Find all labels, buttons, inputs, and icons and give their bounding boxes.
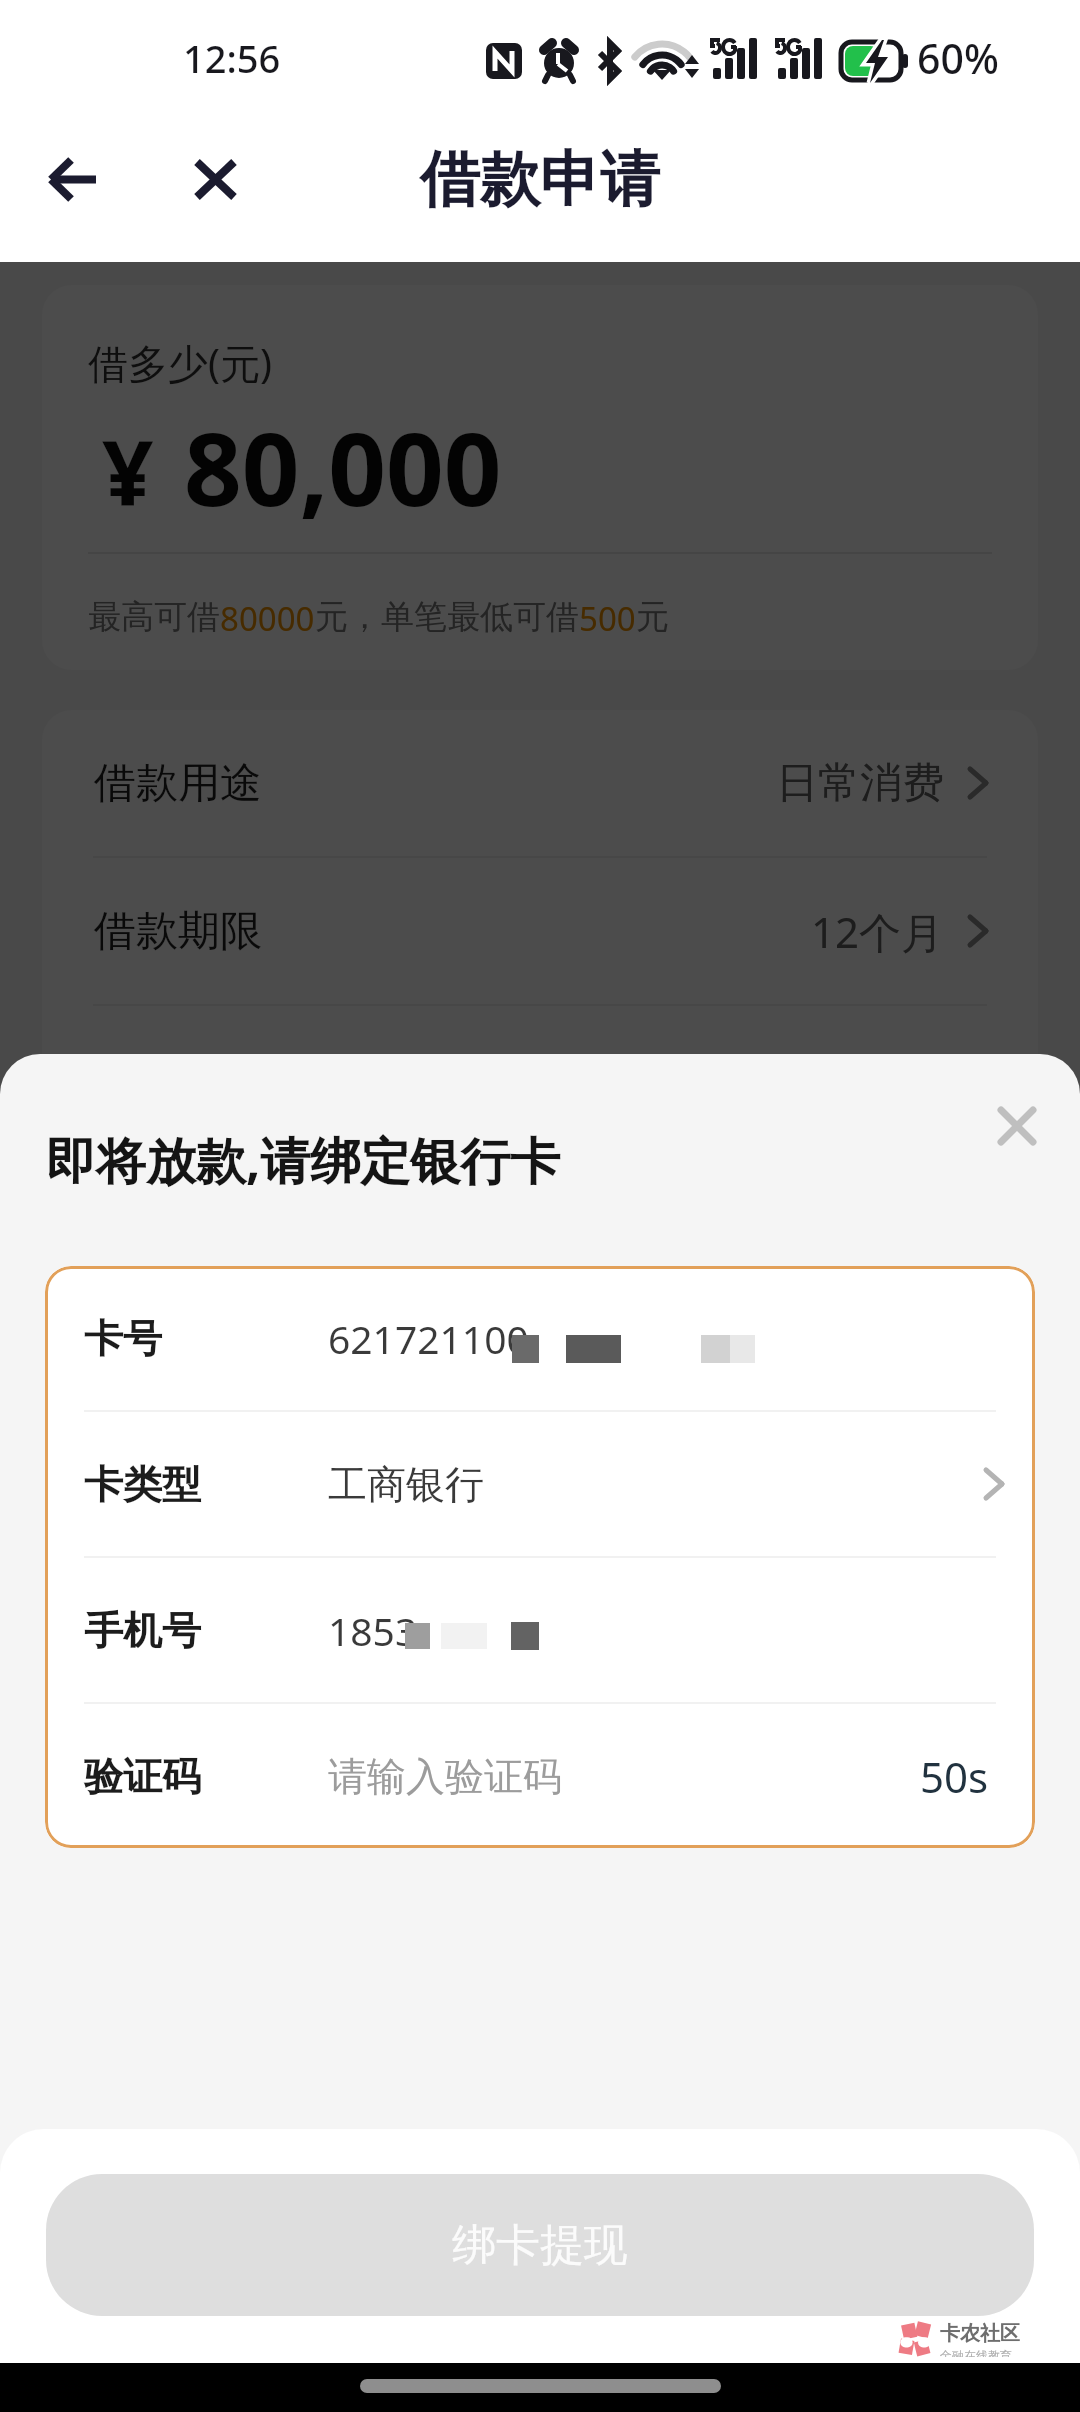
staticText: ¥ bbox=[102, 410, 154, 533]
staticText: 12:56 bbox=[183, 32, 281, 84]
staticText: 1853 bbox=[328, 1604, 418, 1657]
button[interactable]: 验证码 bbox=[45, 1704, 1035, 1848]
staticText: 卡农社区 bbox=[940, 2321, 1020, 2346]
staticText: 借款用途 bbox=[94, 757, 262, 810]
staticText: 元，单笔最低可借 bbox=[315, 596, 579, 638]
button[interactable]: Back bbox=[24, 131, 120, 227]
staticText: 借多少(元) bbox=[88, 335, 272, 390]
staticText: 卡类型 bbox=[84, 1460, 201, 1509]
staticText: 验证码 bbox=[84, 1752, 201, 1801]
button[interactable]: 借款期限 bbox=[94, 858, 987, 1004]
staticText: 工商银行 bbox=[328, 1460, 484, 1509]
staticText: 金融在线教育 bbox=[940, 2348, 1012, 2357]
staticText: 绑卡提现 bbox=[452, 2218, 628, 2273]
staticText: 等额本息 bbox=[776, 1053, 944, 1106]
staticText: 卡号 bbox=[84, 1314, 162, 1363]
staticText: 还款方式 bbox=[94, 1053, 262, 1106]
button[interactable]: 借款用途 bbox=[94, 710, 987, 856]
button[interactable]: 绑卡提现 bbox=[46, 2174, 1034, 2316]
staticText: 60% bbox=[917, 30, 999, 86]
staticText: 请输入验证码 bbox=[328, 1752, 562, 1801]
button[interactable]: 卡类型 bbox=[45, 1412, 1035, 1556]
staticText: 80000 bbox=[220, 596, 315, 641]
button[interactable]: 手机号 bbox=[45, 1558, 1035, 1702]
staticText: 元 bbox=[636, 596, 669, 638]
staticText: 12个月 bbox=[811, 903, 944, 960]
button[interactable]: 卡号 bbox=[45, 1266, 1035, 1410]
staticText: 80,000 bbox=[184, 398, 502, 536]
staticText: 手机号 bbox=[84, 1606, 201, 1655]
staticText: 50s bbox=[920, 1748, 989, 1805]
staticText: 日常消费 bbox=[776, 757, 944, 810]
staticText: 借款期限 bbox=[94, 905, 262, 958]
button[interactable]: Close bbox=[167, 131, 263, 227]
button[interactable]: 还款方式 bbox=[94, 1006, 987, 1152]
staticText: 最高可借 bbox=[88, 596, 220, 638]
button[interactable]: Close sheet bbox=[979, 1088, 1055, 1164]
staticText: 即将放款,请绑定银行卡 bbox=[46, 1126, 561, 1194]
staticText: 借款申请 bbox=[420, 142, 660, 218]
staticText: 621721100 bbox=[328, 1312, 529, 1365]
staticText: 500 bbox=[579, 596, 636, 641]
